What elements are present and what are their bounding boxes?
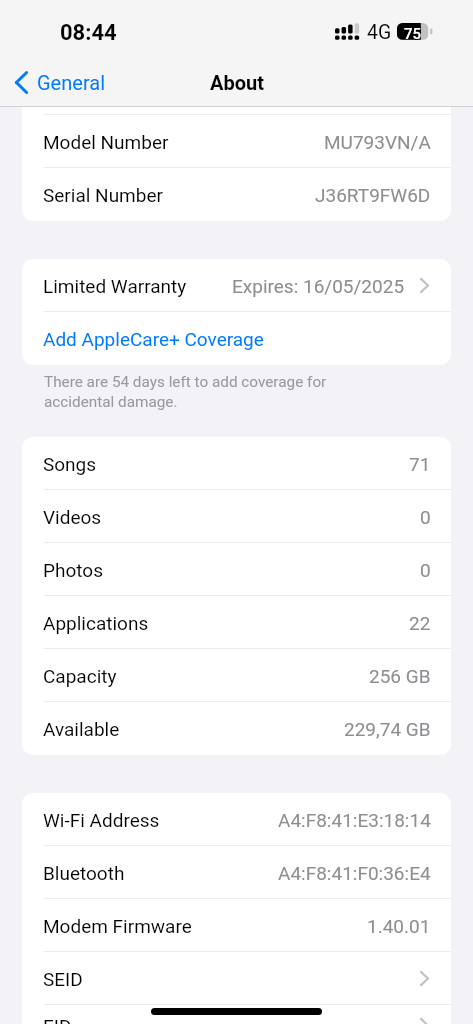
staticText: MU793VN/A <box>324 131 431 153</box>
staticText: 4G <box>367 21 392 44</box>
staticText: General <box>37 71 106 94</box>
staticText: EID <box>43 1015 72 1024</box>
other: Cellular signal <box>335 22 361 41</box>
staticText: SEID <box>43 968 83 990</box>
button[interactable]: Applications <box>22 596 451 649</box>
staticText: 08:44 <box>60 20 117 46</box>
staticText: Add AppleCare+ Coverage <box>43 328 264 350</box>
button[interactable]: EID <box>22 1005 451 1024</box>
staticText: Serial Number <box>43 184 163 206</box>
staticText: Expires: 16/05/2025 <box>232 275 405 297</box>
button[interactable]: SEID <box>22 952 451 1005</box>
staticText: A4:F8:41:F0:36:E4 <box>278 862 431 884</box>
staticText: 0 <box>420 559 431 581</box>
staticText: 1.40.01 <box>367 915 431 937</box>
staticText: Videos <box>43 506 102 528</box>
staticText: Wi-Fi Address <box>43 809 160 831</box>
staticText: Bluetooth <box>43 862 125 884</box>
staticText: 256 GB <box>369 665 431 687</box>
button[interactable]: Bluetooth <box>22 846 451 899</box>
staticText: Capacity <box>43 665 117 687</box>
button[interactable]: Songs <box>22 437 451 490</box>
button[interactable]: Model Number <box>22 115 451 168</box>
staticText: Available <box>43 718 120 740</box>
staticText: 229,74 GB <box>344 718 431 740</box>
staticText: There are 54 days left to add coverage f… <box>44 373 344 411</box>
button[interactable]: Available <box>22 702 451 755</box>
staticText: About <box>210 71 264 94</box>
button[interactable]: Videos <box>22 490 451 543</box>
staticText: A4:F8:41:E3:18:14 <box>278 809 431 831</box>
staticText: 22 <box>409 612 431 634</box>
button[interactable]: Capacity <box>22 649 451 702</box>
other: Battery 75 percent <box>397 23 435 41</box>
button[interactable]: Photos <box>22 543 451 596</box>
staticText: Songs <box>43 453 97 475</box>
button[interactable]: General <box>15 63 106 101</box>
staticText: Limited Warranty <box>43 275 187 297</box>
button[interactable]: Add AppleCare+ Coverage <box>22 312 451 365</box>
staticText: 0 <box>420 506 431 528</box>
button[interactable]: Limited Warranty <box>22 259 451 312</box>
staticText: Applications <box>43 612 149 634</box>
staticText: 71 <box>409 453 431 475</box>
staticText: Photos <box>43 559 103 581</box>
staticText: 75 <box>404 25 422 43</box>
button[interactable]: Wi-Fi Address <box>22 793 451 846</box>
button[interactable]: Modem Firmware <box>22 899 451 952</box>
staticText: Modem Firmware <box>43 915 192 937</box>
staticText: Model Number <box>43 131 169 153</box>
button[interactable]: Serial Number <box>22 168 451 221</box>
staticText: J36RT9FW6D <box>315 184 431 206</box>
